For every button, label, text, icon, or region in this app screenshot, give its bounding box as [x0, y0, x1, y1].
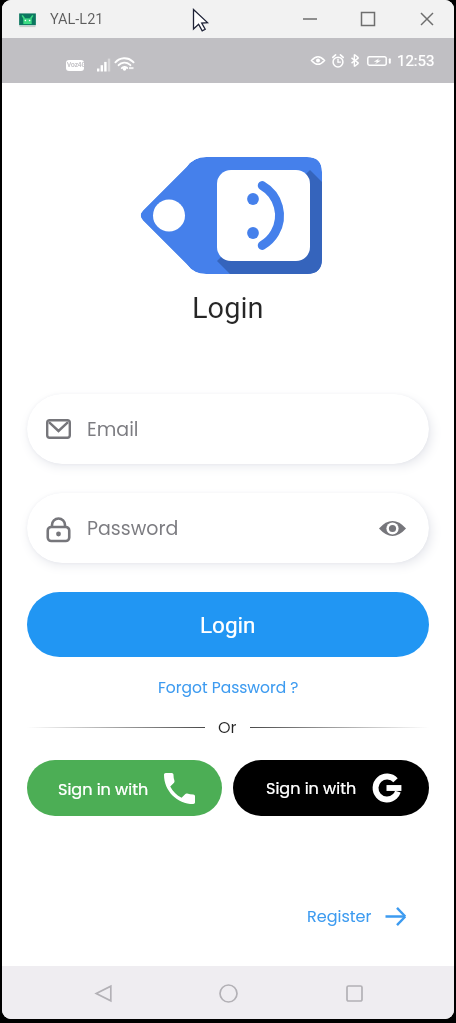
staticText: YAL-L21 [50, 11, 104, 28]
button[interactable]: Register [303, 901, 410, 931]
button[interactable]: Email [27, 394, 429, 464]
button[interactable]: Sign in with [27, 760, 222, 816]
button[interactable]: Show password [376, 512, 408, 544]
button[interactable]: Password [27, 493, 429, 563]
staticText: 12:53 [397, 52, 435, 70]
staticText: Sign in with [266, 777, 357, 799]
staticText: Voz4G [67, 61, 86, 69]
button[interactable]: Back [78, 968, 128, 1018]
staticText: Or [218, 716, 237, 738]
button[interactable]: Forgot Password ? [148, 673, 309, 703]
staticText: Login [200, 612, 256, 638]
staticText: Login [192, 291, 264, 325]
button[interactable]: Login [27, 592, 429, 657]
staticText: Email [87, 416, 139, 443]
staticText: Forgot Password ? [158, 677, 299, 699]
button[interactable]: Recents [329, 968, 379, 1018]
button[interactable]: Sign in with [233, 760, 429, 816]
staticText: Register [307, 905, 372, 927]
staticText: Password [87, 515, 179, 542]
button[interactable]: Home [203, 968, 253, 1018]
staticText: Sign in with [58, 778, 149, 800]
